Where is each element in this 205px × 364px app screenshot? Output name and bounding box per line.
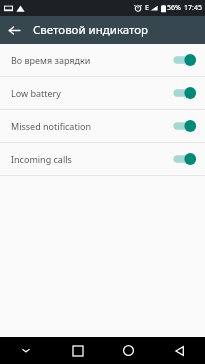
button[interactable]: Low battery — [0, 77, 205, 109]
staticText: Low battery — [11, 87, 172, 99]
button[interactable]: Hide — [0, 337, 52, 364]
other: Toggle — [172, 86, 196, 100]
button[interactable]: Missed notification — [0, 110, 205, 142]
staticText: Во время зарядки — [11, 54, 172, 66]
staticText: E — [145, 3, 149, 13]
staticText: Incoming calls — [11, 153, 172, 165]
button[interactable]: Back — [154, 337, 205, 364]
button[interactable]: Incoming calls — [0, 143, 205, 175]
other: Toggle — [172, 119, 196, 133]
staticText: Световой индикатор — [33, 22, 149, 38]
other: Toggle — [172, 53, 196, 67]
button[interactable]: Recents — [52, 337, 103, 364]
button[interactable]: Back — [0, 16, 28, 44]
staticText: Missed notification — [11, 120, 172, 132]
button[interactable]: Home — [103, 337, 154, 364]
staticText: 17:45 — [184, 3, 202, 13]
other: Toggle — [172, 152, 196, 166]
staticText: 56% — [167, 3, 181, 13]
button[interactable]: Во время зарядки — [0, 44, 205, 76]
